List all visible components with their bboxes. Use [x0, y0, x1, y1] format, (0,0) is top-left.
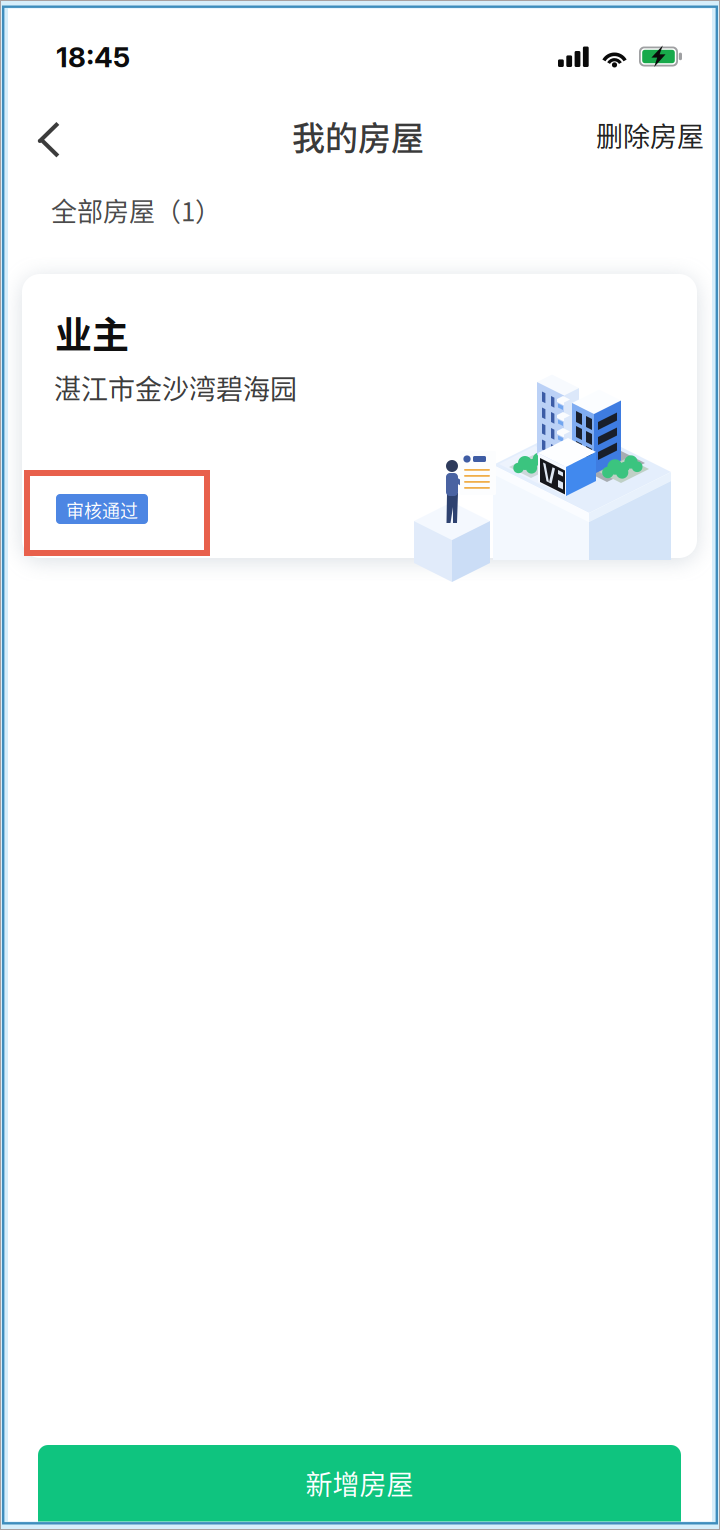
staticText: 湛江市金沙湾碧海园	[54, 368, 297, 407]
staticText: 全部房屋（1）	[51, 191, 221, 229]
button[interactable]: 返回	[8, 106, 84, 172]
staticText: 删除房屋	[596, 115, 704, 155]
button[interactable]: 删除房屋	[590, 106, 710, 164]
staticText: 审核通过	[66, 497, 138, 523]
staticText: 我的房屋	[292, 112, 424, 160]
button[interactable]: 新增房屋	[38, 1445, 681, 1530]
staticText: 业主	[55, 306, 129, 360]
staticText: 18:45	[56, 40, 130, 74]
button[interactable]: 审核通过	[56, 494, 148, 524]
staticText: 新增房屋	[305, 1463, 413, 1503]
